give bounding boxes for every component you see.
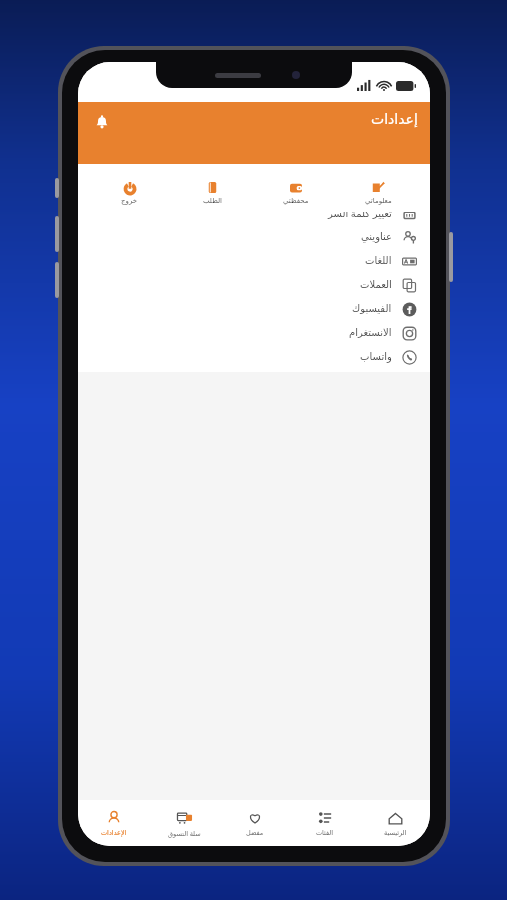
button[interactable]: الفئات (290, 800, 360, 846)
staticText: الإعدادات (101, 829, 127, 837)
button[interactable]: مفضل (220, 800, 290, 846)
button[interactable]: Notifications (88, 108, 116, 136)
button[interactable]: الفيسبوك (78, 297, 430, 321)
button[interactable]: العملات (78, 273, 430, 297)
button[interactable]: الإعدادات (78, 800, 149, 846)
staticText: عناويني (361, 231, 392, 243)
button[interactable]: محفظتي (254, 173, 337, 212)
staticText: واتساب (360, 351, 392, 363)
button[interactable]: واتساب (78, 345, 430, 369)
button[interactable]: اللغات (78, 249, 430, 273)
staticText: الفئات (316, 829, 334, 837)
staticText: محفظتي (283, 197, 309, 205)
staticText: الطلب (203, 197, 223, 205)
staticText: خروج (121, 197, 138, 205)
button[interactable]: خروج (88, 173, 171, 212)
staticText: إعدادات (371, 111, 418, 127)
staticText: معلوماتي (365, 197, 392, 205)
staticText: اللغات (365, 255, 392, 267)
button[interactable]: معلوماتي (337, 173, 420, 212)
button[interactable]: سلة التسوق (149, 800, 220, 846)
button[interactable]: الرئيسية (360, 800, 430, 846)
staticText: العملات (360, 279, 392, 291)
staticText: الانستغرام (349, 327, 392, 339)
staticText: تغيير كلمة السر (328, 206, 392, 220)
staticText: الرئيسية (384, 829, 407, 837)
staticText: سلة التسوق (168, 829, 201, 838)
staticText: مفضل (246, 829, 264, 837)
staticText: الفيسبوك (352, 303, 392, 315)
button[interactable]: عناويني (78, 225, 430, 249)
button[interactable]: الطلب (171, 173, 254, 212)
button[interactable]: تغيير كلمة السر (78, 201, 430, 225)
button[interactable]: الانستغرام (78, 321, 430, 345)
